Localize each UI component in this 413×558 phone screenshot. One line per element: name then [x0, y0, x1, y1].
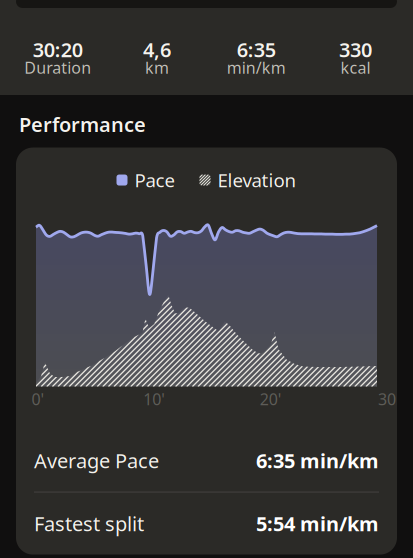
staticText: 6:35 min/km	[256, 447, 379, 474]
staticText: 4,6	[143, 36, 171, 63]
staticText: Elevation	[217, 168, 296, 192]
staticText: 30:20	[33, 36, 83, 63]
staticText: min/km	[227, 57, 286, 78]
staticText: Pace	[134, 168, 175, 192]
staticText: 10'	[143, 388, 165, 410]
staticText: Performance	[19, 111, 146, 138]
staticText: km	[145, 57, 169, 78]
staticText: 30	[378, 388, 396, 410]
staticText: 0'	[31, 388, 44, 410]
staticText: 330	[339, 36, 372, 63]
staticText: Average Pace	[34, 447, 159, 474]
button[interactable]: Fastest split	[16, 493, 397, 555]
staticText: Duration	[24, 57, 91, 78]
button[interactable]: Average Pace	[16, 430, 397, 492]
staticText: Fastest split	[34, 510, 144, 537]
staticText: 6:35	[237, 36, 276, 63]
staticText: 20'	[260, 388, 282, 410]
staticText: kcal	[340, 57, 370, 78]
staticText: 5:54 min/km	[256, 510, 379, 537]
